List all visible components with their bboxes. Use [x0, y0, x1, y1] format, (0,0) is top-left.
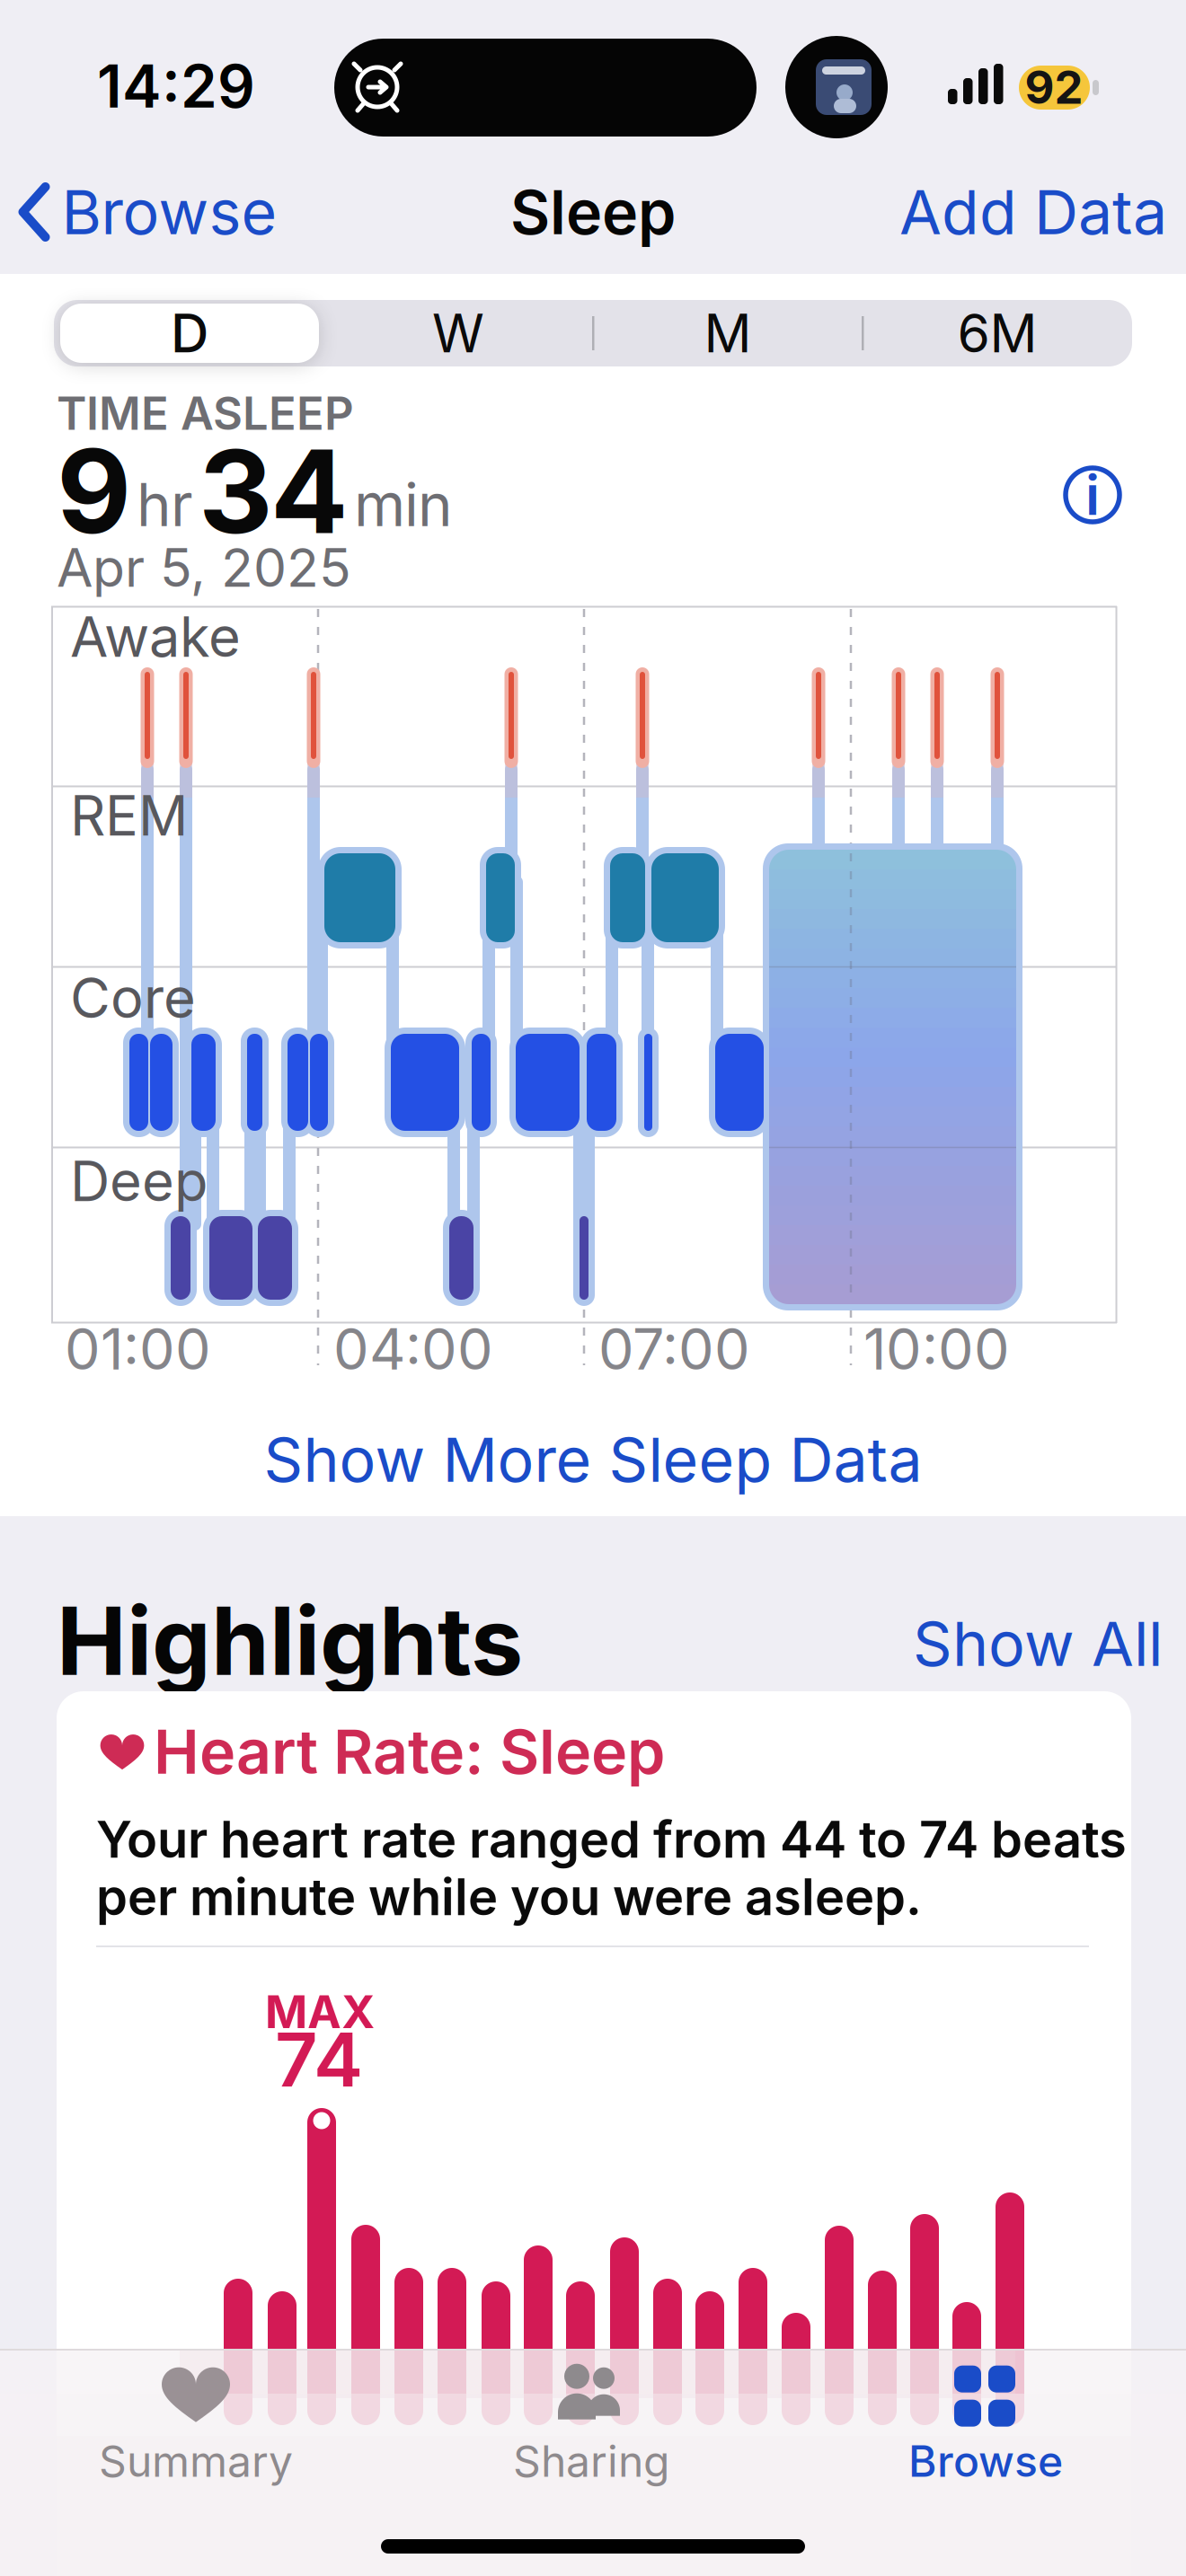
staticText: 74	[275, 2016, 363, 2103]
staticText: M	[704, 302, 752, 364]
button[interactable]: About Time Asleep	[1063, 465, 1122, 525]
staticText: Show More Sleep Data	[264, 1424, 922, 1496]
staticText: Core	[70, 965, 196, 1030]
staticText: TIME ASLEEP	[57, 386, 354, 440]
staticText: 6M	[957, 302, 1037, 364]
staticText: 34	[199, 423, 349, 559]
staticText: hr	[137, 470, 193, 539]
staticText: min	[354, 470, 453, 539]
staticText: 04:00	[333, 1316, 493, 1382]
staticText: 14:29	[97, 52, 255, 121]
staticText: Highlights	[57, 1586, 523, 1696]
staticText: 01:00	[65, 1316, 211, 1382]
button[interactable]: 6M	[867, 300, 1128, 366]
staticText: Your heart rate ranged from 44 to 74 bea…	[96, 1810, 1127, 1869]
button[interactable]: Sharing	[513, 2364, 669, 2486]
button[interactable]: M	[597, 300, 858, 366]
staticText: Heart Rate: Sleep	[154, 1715, 665, 1787]
staticText: REM	[70, 783, 188, 848]
staticText: Browse	[62, 176, 277, 248]
button[interactable]: Add Data	[899, 176, 1167, 248]
staticText: per minute while you were asleep.	[96, 1867, 922, 1927]
staticText: Sleep	[510, 176, 676, 248]
staticText: Deep	[70, 1149, 208, 1214]
staticText: Apr 5, 2025	[57, 537, 351, 599]
staticText: 92	[1025, 60, 1083, 114]
staticText: Show All	[913, 1608, 1163, 1680]
button[interactable]: Browse	[908, 2364, 1063, 2486]
staticText: Sharing	[513, 2436, 669, 2486]
button[interactable]: Heart Rate: Sleep	[57, 1691, 1131, 2576]
staticText: Summary	[99, 2436, 293, 2486]
button[interactable]: W	[328, 300, 589, 366]
button[interactable]: Show More Sleep Data	[264, 1424, 922, 1496]
staticText: 07:00	[598, 1316, 750, 1382]
staticText: i	[1085, 462, 1100, 527]
button[interactable]: Show All	[913, 1608, 1163, 1680]
staticText: D	[171, 302, 208, 364]
staticText: 10:00	[863, 1316, 1010, 1382]
staticText: W	[432, 302, 484, 364]
staticText: 9	[57, 423, 131, 559]
staticText: MAX	[265, 1985, 375, 2039]
staticText: Add Data	[899, 176, 1167, 248]
button[interactable]: D	[57, 300, 323, 366]
button[interactable]: Browse	[19, 176, 277, 248]
staticText: Awake	[70, 604, 241, 669]
button[interactable]: Summary	[99, 2364, 293, 2486]
staticText: Browse	[908, 2436, 1063, 2486]
